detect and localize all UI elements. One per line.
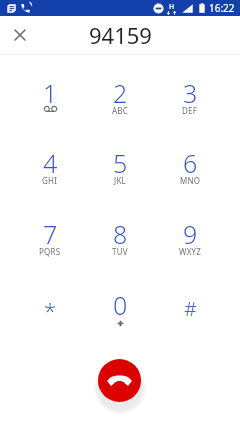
staticText: 94159 — [89, 20, 152, 50]
staticText: JKL — [114, 175, 126, 186]
staticText: ABC — [112, 105, 128, 116]
staticText: MNO — [180, 175, 201, 186]
staticText: 7 — [43, 217, 58, 251]
button[interactable]: 0 — [85, 282, 155, 352]
staticText: WXYZ — [179, 246, 202, 257]
staticText: GHI — [42, 175, 58, 186]
button[interactable]: 1 — [15, 70, 85, 140]
staticText: * — [44, 295, 57, 325]
staticText: 3 — [183, 76, 198, 110]
button[interactable]: 7 — [15, 211, 85, 281]
button[interactable]: * — [15, 282, 85, 352]
staticText: 0 — [113, 288, 128, 322]
button[interactable]: 8 — [85, 211, 155, 281]
staticText: 9 — [183, 217, 198, 251]
staticText: DEF — [182, 105, 198, 116]
staticText: 6 — [183, 146, 198, 180]
button[interactable]: 3 — [155, 70, 225, 140]
staticText: # — [184, 295, 197, 322]
button[interactable]: 5 — [85, 140, 155, 210]
staticText: 2 — [113, 76, 128, 110]
staticText: TUV — [112, 246, 128, 257]
staticText: 1 — [43, 76, 58, 110]
staticText: 8 — [113, 217, 128, 251]
button[interactable]: End call — [98, 359, 141, 402]
staticText: 4 — [43, 146, 58, 180]
button[interactable]: 4 — [15, 140, 85, 210]
button[interactable]: 2 — [85, 70, 155, 140]
staticText: 16:22 — [209, 1, 235, 15]
button[interactable]: Close — [7, 22, 33, 48]
button[interactable]: 6 — [155, 140, 225, 210]
button[interactable]: 9 — [155, 211, 225, 281]
staticText: 5 — [113, 146, 128, 180]
staticText: PQRS — [39, 246, 61, 257]
button[interactable]: # — [155, 282, 225, 352]
staticText: H — [169, 2, 175, 12]
